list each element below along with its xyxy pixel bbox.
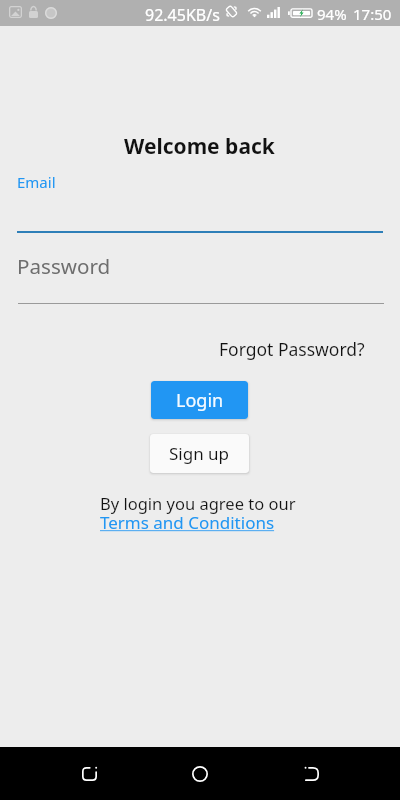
other: Auto rotate [225,5,238,18]
staticText: Login [176,388,224,413]
other: Mobile signal [267,7,281,18]
button[interactable]: Sign up [150,434,249,473]
other: Secure [29,6,38,18]
staticText: Forgot Password? [219,337,365,361]
staticText: 94% [317,4,347,24]
button[interactable]: Terms and Conditions [100,511,275,534]
button[interactable]: Recent apps [65,750,113,798]
staticText: Password [17,252,111,280]
button[interactable]: Forgot Password? [211,329,373,369]
other: Screenshot saved [9,6,22,18]
staticText: Email [17,172,56,192]
staticText: 92.45KB/s [145,4,220,26]
button[interactable]: Login [151,381,248,419]
other: Battery charging 94 percent [288,7,312,19]
button[interactable]: Back [288,750,336,798]
staticText: Welcome back [124,132,275,161]
other: Wi-Fi [246,6,263,18]
staticText: By login you agree to our [100,492,296,514]
staticText: Sign up [169,442,230,465]
button[interactable]: Password [17,246,383,304]
button[interactable]: Email [17,166,383,233]
button[interactable]: Home [176,750,224,798]
staticText: 17:50 [353,4,392,24]
